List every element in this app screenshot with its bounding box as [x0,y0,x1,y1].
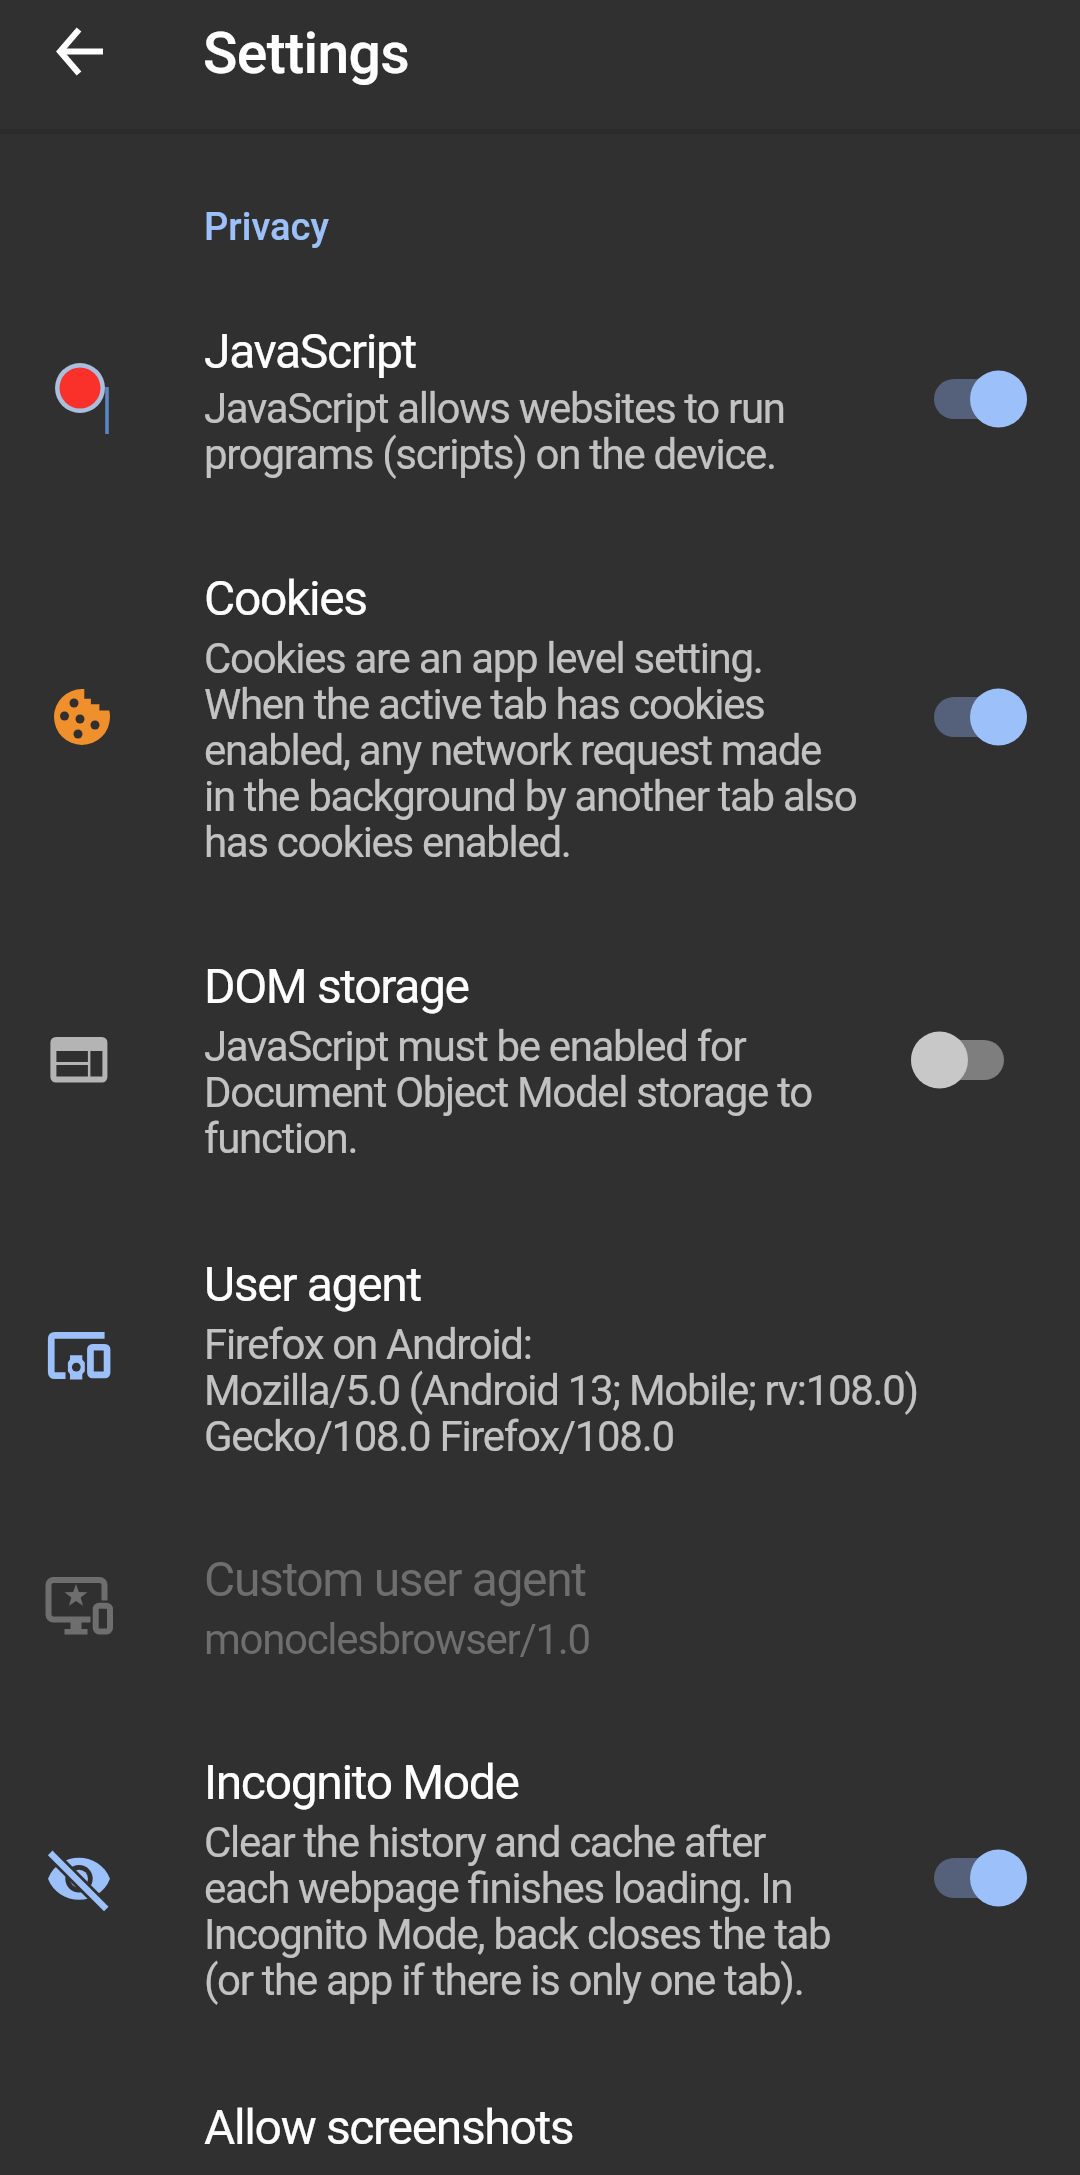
staticText: Incognito Mode [204,1754,519,1810]
staticText: User agent [204,1256,421,1312]
button[interactable]: Cookies [0,552,1080,932]
button[interactable]: JavaScript toggle [903,359,1039,439]
staticText: Clear the history and cache after [204,1818,765,1867]
button[interactable]: Incognito Mode toggle [903,1838,1039,1918]
button[interactable]: Cookies toggle [903,677,1039,757]
staticText: Mozilla/5.0 (Android 13; Mobile; rv:108.… [204,1366,918,1415]
staticText: Settings [203,20,410,87]
staticText: in the background by another tab also [204,772,857,821]
staticText: (or the app if there is only one tab). [204,1956,804,2005]
staticText: Cookies [204,570,367,626]
button[interactable]: Allow screenshots [0,2080,1080,2175]
staticText: Allow screenshots [204,2099,574,2155]
staticText: enabled, any network request made [204,726,822,775]
staticText: DOM storage [204,958,469,1014]
staticText: Custom user agent [204,1551,586,1607]
button[interactable]: DOM storage [0,940,1080,1230]
button[interactable]: Back [32,4,128,100]
staticText: JavaScript allows websites to run [204,384,785,433]
staticText: Document Object Model storage to [204,1068,812,1117]
button[interactable]: JavaScript [0,300,1080,540]
staticText: has cookies enabled. [204,818,571,867]
staticText: Firefox on Android: [204,1320,532,1369]
button[interactable]: DOM storage toggle [903,1020,1039,1100]
staticText: When the active tab has cookies [204,680,765,729]
staticText: each webpage finishes loading. In [204,1864,793,1913]
button[interactable]: Custom user agent [0,1535,1080,1730]
staticText: programs (scripts) on the device. [204,430,776,479]
staticText: Gecko/108.0 Firefox/108.0 [204,1412,674,1461]
staticText: monoclesbrowser/1.0 [204,1615,590,1664]
staticText: JavaScript [204,323,416,379]
staticText: JavaScript must be enabled for [204,1022,746,1071]
staticText: function. [204,1114,358,1163]
staticText: Incognito Mode, back closes the tab [204,1910,831,1959]
staticText: Cookies are an app level setting. [204,634,763,683]
staticText: Privacy [204,205,329,250]
button[interactable]: User agent [0,1240,1080,1525]
button[interactable]: Incognito Mode [0,1740,1080,2070]
